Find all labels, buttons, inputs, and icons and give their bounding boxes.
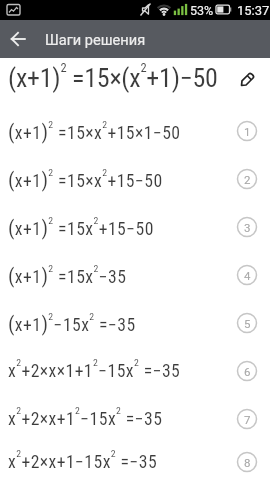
- staticText: 5: [244, 317, 251, 330]
- staticText: 3: [244, 221, 251, 234]
- staticText: 53%: [190, 3, 214, 18]
- staticText: 2: [244, 173, 251, 186]
- staticText: (x+1)2 =15x2+15−50: [8, 215, 154, 240]
- staticText: (x+1)2 =15x2−35: [8, 263, 127, 288]
- staticText: (x+1)2 =15×x2+15−50: [8, 167, 163, 192]
- button[interactable]: x2+2×x×1+12−15x2 =−35: [0, 346, 270, 394]
- staticText: x2+2×x×1+12−15x2 =−35: [8, 357, 181, 382]
- button[interactable]: [232, 67, 262, 97]
- staticText: x2+2×x+1−15x2 =−35: [8, 448, 158, 473]
- staticText: (x+1)2−15x2 =−35: [8, 311, 136, 336]
- button[interactable]: (x+1)2 =15x2+15−50: [0, 202, 270, 250]
- staticText: (x+1)2 =15×(x2+1)−50: [8, 60, 218, 94]
- staticText: Шаги решения: [45, 31, 146, 48]
- staticText: 15:37: [237, 3, 270, 18]
- staticText: x2+2×x+12−15x2 =−35: [8, 405, 163, 430]
- button[interactable]: (x+1)2 =15x2−35: [0, 250, 270, 298]
- staticText: (x+1)2 =15×x2+15×1−50: [8, 119, 181, 144]
- staticText: 4: [244, 269, 251, 282]
- button[interactable]: (x+1)2−15x2 =−35: [0, 298, 270, 346]
- staticText: 8: [244, 456, 251, 469]
- staticText: 7: [244, 413, 251, 426]
- button[interactable]: (x+1)2 =15×x2+15−50: [0, 154, 270, 202]
- button[interactable]: x2+2×x+1−15x2 =−35: [0, 442, 270, 480]
- button[interactable]: [0, 20, 38, 58]
- staticText: 6: [244, 365, 251, 378]
- staticText: 1: [244, 125, 251, 138]
- button[interactable]: (x+1)2 =15×(x2+1)−50: [0, 58, 270, 106]
- button[interactable]: (x+1)2 =15×x2+15×1−50: [0, 106, 270, 154]
- button[interactable]: x2+2×x+12−15x2 =−35: [0, 394, 270, 442]
